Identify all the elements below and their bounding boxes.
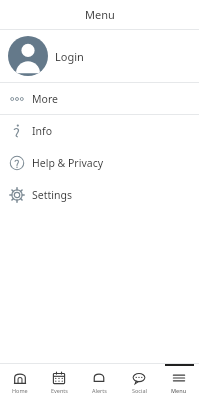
staticText: Social <box>132 387 147 394</box>
button[interactable]: Login <box>0 30 199 82</box>
button[interactable]: Help & Privacy <box>0 147 199 179</box>
staticText: Help & Privacy <box>32 156 104 170</box>
staticText: Events <box>51 387 68 394</box>
staticText: Menu <box>85 7 115 22</box>
button[interactable]: Menu <box>159 364 199 400</box>
staticText: Menu <box>171 387 187 394</box>
button[interactable]: More <box>0 83 199 114</box>
button[interactable]: Info <box>0 115 199 147</box>
staticText: Home <box>12 387 28 394</box>
button[interactable]: Events <box>39 364 79 400</box>
staticText: Login <box>55 49 84 64</box>
button[interactable]: Social <box>119 364 159 400</box>
button[interactable]: Home <box>0 364 39 400</box>
staticText: Alerts <box>92 387 107 394</box>
staticText: More <box>32 92 58 106</box>
button[interactable]: Alerts <box>79 364 119 400</box>
staticText: Info <box>32 124 53 138</box>
staticText: Settings <box>32 188 72 202</box>
button[interactable]: Settings <box>0 179 199 211</box>
